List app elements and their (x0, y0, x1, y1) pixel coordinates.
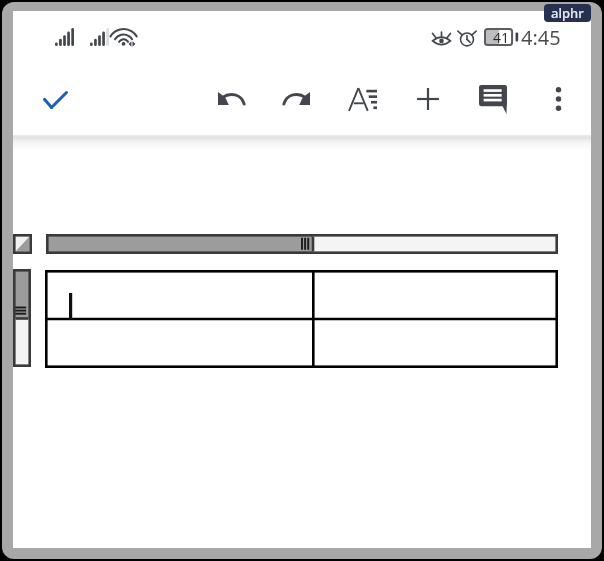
button[interactable]: Comments (471, 83, 513, 125)
button[interactable]: Undo (211, 83, 253, 125)
staticText: 41 (493, 28, 510, 46)
button[interactable]: Text formatting (341, 83, 383, 125)
button[interactable]: More options (537, 83, 579, 125)
button[interactable]: Insert (407, 83, 449, 125)
staticText: 4:45 (521, 24, 561, 50)
button[interactable]: Redo (275, 83, 317, 125)
button[interactable]: Done (34, 79, 76, 121)
staticText: alphr (551, 4, 584, 22)
